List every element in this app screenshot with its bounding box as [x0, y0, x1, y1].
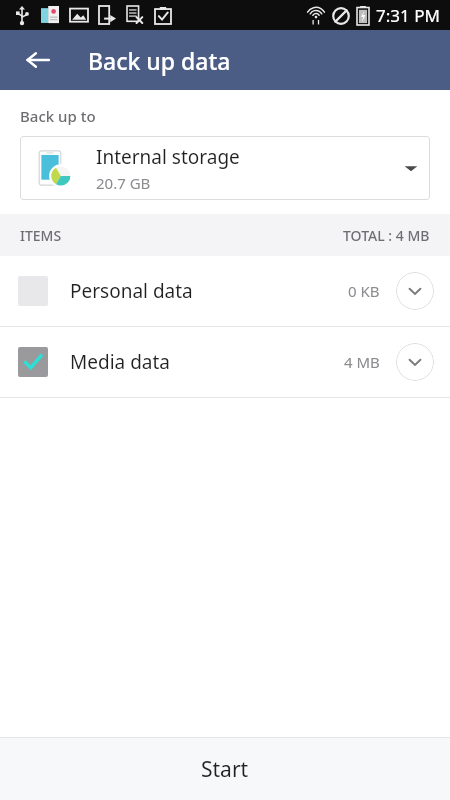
staticText: TOTAL : 4 MB: [343, 226, 430, 245]
button[interactable]: Start: [0, 738, 450, 800]
staticText: Start: [201, 755, 249, 784]
staticText: 7:31 PM: [376, 4, 440, 27]
button[interactable]: Expand Personal data: [396, 272, 434, 310]
staticText: Back up to: [20, 106, 96, 126]
staticText: Personal data: [70, 278, 193, 304]
staticText: 4 MB: [344, 352, 380, 372]
button[interactable]: Unchecked: [0, 256, 450, 326]
staticText: 20.7 GB: [96, 173, 151, 193]
button[interactable]: Checked: [0, 327, 450, 397]
button[interactable]: Expand Media data: [396, 343, 434, 381]
staticText: 0 KB: [348, 281, 380, 301]
staticText: Internal storage: [96, 144, 240, 170]
staticText: ITEMS: [20, 226, 62, 245]
button[interactable]: Checked: [18, 347, 48, 377]
staticText: Back up data: [88, 45, 231, 76]
button[interactable]: Back: [12, 34, 64, 86]
staticText: Media data: [70, 349, 170, 375]
button[interactable]: Internal storage: [20, 136, 430, 200]
